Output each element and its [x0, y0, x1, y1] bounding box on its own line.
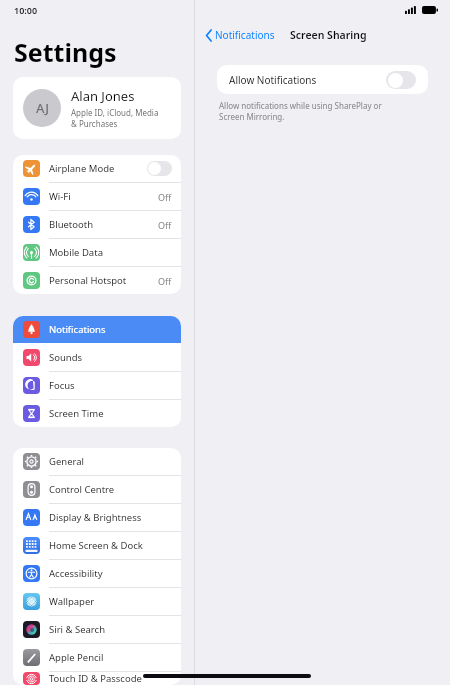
staticText: Mobile Data	[49, 246, 172, 259]
button[interactable]: Allow Notifications	[217, 65, 428, 94]
staticText: Sounds	[49, 351, 172, 364]
staticText: Apple Pencil	[49, 651, 172, 664]
staticText: Airplane Mode	[49, 162, 147, 175]
staticText: Accessibility	[49, 567, 172, 580]
staticText: Apple ID, iCloud, Media & Purchases	[71, 107, 159, 129]
staticText: Siri & Search	[49, 623, 172, 636]
staticText: General	[49, 455, 172, 468]
staticText: Touch ID & Passcode	[49, 672, 172, 685]
button[interactable]: Screen Time	[13, 400, 181, 427]
button[interactable]: General	[13, 448, 181, 475]
button[interactable]: Focus	[13, 372, 181, 399]
button[interactable]: Wi-Fi	[13, 183, 181, 210]
button[interactable]: Bluetooth	[13, 211, 181, 238]
staticText: Focus	[49, 379, 172, 392]
button[interactable]: Touch ID & Passcode	[13, 672, 181, 685]
button[interactable]: Siri & Search	[13, 616, 181, 643]
staticText: Screen Time	[49, 407, 172, 420]
button[interactable]: Personal Hotspot	[13, 267, 181, 294]
staticText: Screen Sharing	[290, 28, 367, 42]
button[interactable]: Accessibility	[13, 560, 181, 587]
staticText: Off	[158, 275, 172, 287]
button[interactable]: Control Centre	[13, 476, 181, 503]
staticText: 10:00	[14, 4, 38, 16]
button[interactable]: Mobile Data	[13, 239, 181, 266]
button[interactable]: Wallpaper	[13, 588, 181, 615]
staticText: Settings	[14, 35, 117, 69]
staticText: Notifications	[215, 28, 275, 42]
staticText: Notifications	[49, 323, 172, 336]
button[interactable]: Apple Pencil	[13, 644, 181, 671]
staticText: Allow notifications while using SharePla…	[219, 100, 382, 122]
button[interactable]: Home Screen & Dock	[13, 532, 181, 559]
staticText: Display & Brightness	[49, 511, 172, 524]
staticText: Off	[158, 219, 172, 231]
staticText: Off	[158, 191, 172, 203]
button[interactable]: Display & Brightness	[13, 504, 181, 531]
button[interactable]: Allow Notifications toggle	[386, 71, 416, 89]
button[interactable]: Airplane Mode	[13, 155, 181, 182]
button[interactable]: Notifications	[203, 26, 278, 44]
button[interactable]: Airplane Mode toggle	[147, 161, 172, 176]
staticText: Wallpaper	[49, 595, 172, 608]
button[interactable]: Notifications	[13, 316, 181, 343]
staticText: Home Screen & Dock	[49, 539, 172, 552]
staticText: Bluetooth	[49, 218, 158, 231]
staticText: Personal Hotspot	[49, 274, 158, 287]
button[interactable]: Sounds	[13, 344, 181, 371]
staticText: Wi-Fi	[49, 190, 158, 203]
staticText: AJ	[36, 99, 49, 117]
staticText: Allow Notifications	[229, 73, 386, 87]
button[interactable]: AJ	[13, 77, 181, 139]
staticText: Alan Jones	[71, 87, 135, 105]
staticText: Control Centre	[49, 483, 172, 496]
